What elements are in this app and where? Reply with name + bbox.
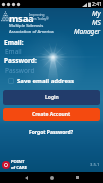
button[interactable]: Recents xyxy=(71,172,83,183)
button[interactable]: Create Account xyxy=(3,108,100,121)
button[interactable]: Back xyxy=(20,172,32,183)
staticText: Create Account xyxy=(32,111,71,118)
button[interactable]: Login xyxy=(3,90,100,105)
staticText: msaa xyxy=(9,12,34,25)
staticText: Email: xyxy=(4,38,24,47)
staticText: Manager xyxy=(74,27,101,36)
staticText: Email xyxy=(5,47,22,56)
staticText: Forgot Password? xyxy=(29,129,74,136)
staticText: 3.5.1 xyxy=(90,162,100,168)
staticText: Password: xyxy=(4,56,37,65)
staticText: 2:41 xyxy=(92,1,102,8)
staticText: Association of America xyxy=(9,29,54,35)
button[interactable]: Save email address xyxy=(0,76,103,86)
staticText: Password xyxy=(5,66,35,75)
staticText: Login xyxy=(45,94,59,101)
button[interactable]: Forgot Password? xyxy=(0,127,103,137)
staticText: Lives Today® xyxy=(29,17,49,21)
staticText: POINT xyxy=(11,159,25,165)
staticText: Save email address xyxy=(17,77,74,85)
staticText: MS xyxy=(92,18,101,27)
staticText: Improving xyxy=(29,13,45,17)
staticText: of CARE xyxy=(11,165,28,171)
staticText: My xyxy=(92,9,101,18)
button[interactable]: Home xyxy=(46,172,58,183)
staticText: Multiple Sclerosis xyxy=(9,23,44,29)
